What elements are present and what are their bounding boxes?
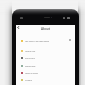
- button[interactable]: Account: [16, 76, 75, 83]
- staticText: Opportunity: [25, 65, 36, 67]
- button[interactable]: Terms of credit: [16, 69, 75, 76]
- button[interactable]: Hey there! I am using Signal: [16, 37, 75, 44]
- staticText: Terms of credit: [25, 72, 38, 74]
- button[interactable]: Opportunity: [16, 62, 75, 69]
- staticText: Hey there! I am using Signal: [25, 40, 50, 42]
- button[interactable]: Back: [16, 25, 21, 30]
- staticText: Account: [25, 79, 32, 81]
- staticText: How to chat: [25, 50, 36, 52]
- staticText: About: [41, 27, 50, 31]
- button[interactable]: How to chat: [16, 47, 75, 54]
- button[interactable]: Call Service: [16, 54, 75, 61]
- staticText: Call Service: [25, 57, 35, 59]
